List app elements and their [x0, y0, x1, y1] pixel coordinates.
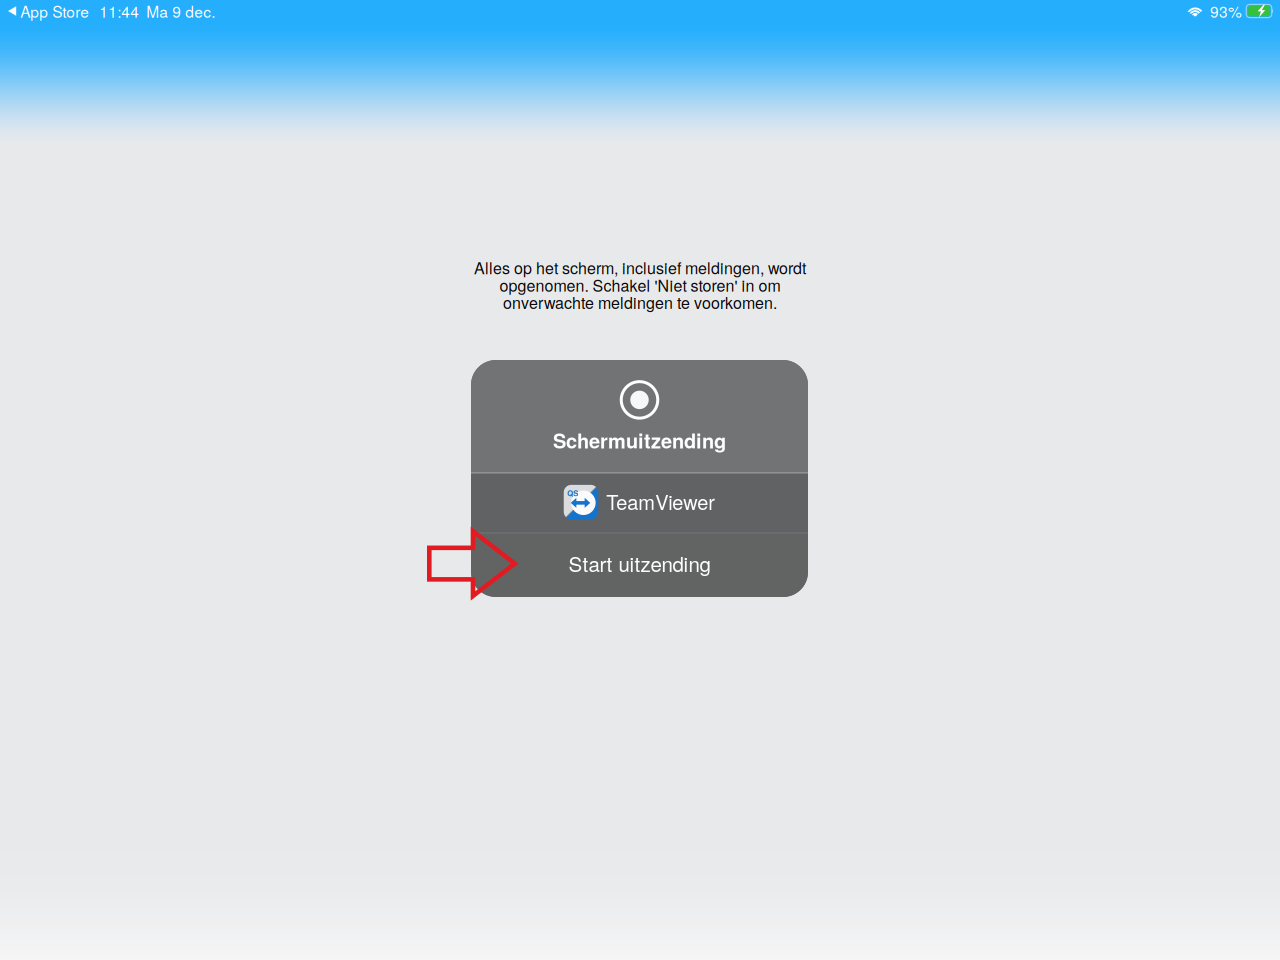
staticText: Alles op het scherm, inclusief meldingen…	[474, 256, 806, 279]
staticText: onverwachte meldingen te voorkomen.	[503, 291, 777, 313]
staticText: 11:44	[99, 0, 139, 22]
staticText: 93%	[1210, 0, 1242, 22]
button[interactable]: Schermuitzending	[471, 359, 808, 472]
staticText: QS	[567, 488, 578, 499]
button[interactable]: Start uitzending	[471, 534, 808, 598]
staticText: opgenomen. Schakel 'Niet storen' in om	[499, 273, 780, 296]
staticText: Schermuitzending	[553, 426, 726, 454]
staticText: Ma 9 dec.	[146, 0, 215, 22]
staticText: App Store	[20, 0, 89, 22]
staticText: Start uitzending	[568, 548, 710, 578]
button[interactable]: Back to App Store	[0, 0, 93, 22]
button[interactable]: QS	[471, 474, 808, 533]
staticText: TeamViewer	[606, 487, 715, 516]
